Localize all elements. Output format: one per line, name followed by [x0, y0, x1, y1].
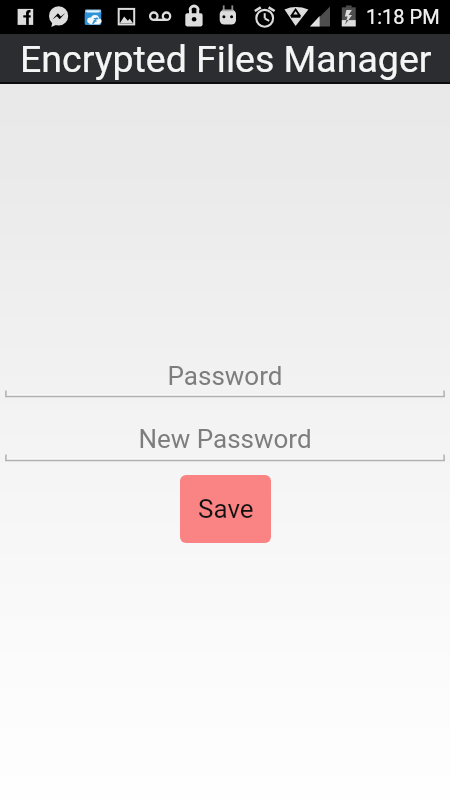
button[interactable]: Save password	[180, 475, 271, 543]
staticText: Encrypted Files Manager	[20, 37, 432, 81]
staticText: New Password	[5, 424, 445, 454]
staticText: Save	[198, 494, 254, 524]
staticText: Password	[5, 361, 445, 391]
button[interactable]: Password	[0, 357, 450, 400]
staticText: 1:18 PM	[366, 5, 440, 28]
other: Status icons	[0, 0, 450, 34]
button[interactable]: New Password	[0, 421, 450, 464]
